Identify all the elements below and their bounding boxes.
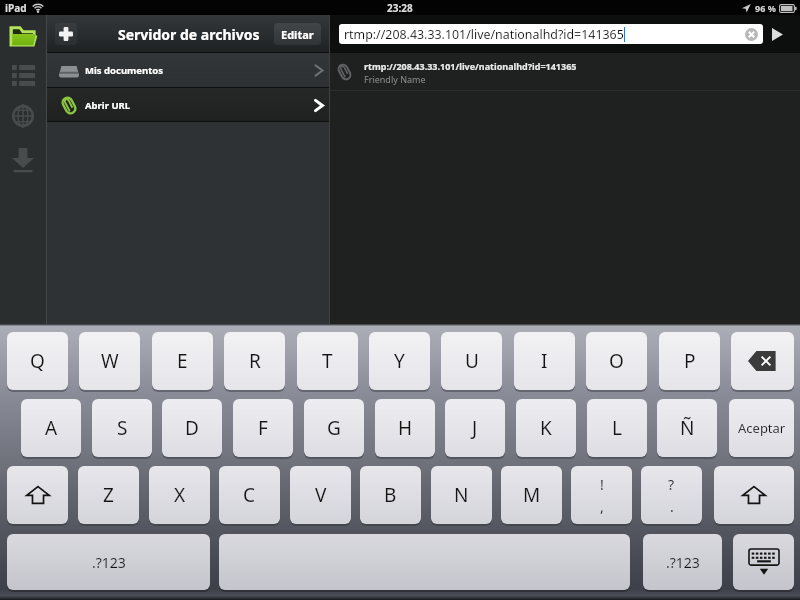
button[interactable]: I [514, 332, 575, 390]
staticText: J [472, 415, 478, 441]
button[interactable]: Downloads [4, 146, 42, 174]
staticText: A [45, 415, 58, 441]
staticText: ? [668, 475, 675, 494]
staticText: Abrir URL [85, 99, 131, 112]
staticText: Aceptar [738, 419, 786, 437]
button[interactable]: H [375, 399, 435, 457]
staticText: X [174, 482, 186, 508]
staticText: S [117, 415, 128, 441]
button[interactable]: File server [4, 21, 42, 49]
staticText: iPad [5, 1, 27, 15]
button[interactable]: B [360, 466, 421, 524]
button[interactable]: R [224, 332, 285, 390]
staticText: V [315, 482, 327, 508]
staticText: E [177, 348, 188, 374]
staticText: , [600, 497, 604, 516]
button[interactable]: Add [55, 23, 77, 45]
staticText: .?123 [666, 553, 700, 572]
staticText: .?123 [92, 553, 126, 572]
button[interactable]: rtmp://208.43.33.101/live/nationalhd?id=… [339, 24, 763, 44]
button[interactable]: Abrir URL [47, 88, 330, 122]
button[interactable]: K [516, 399, 576, 457]
button[interactable]: Ñ [657, 399, 717, 457]
button[interactable]: .?123 [7, 534, 210, 590]
staticText: R [249, 348, 261, 374]
button[interactable]: Q [7, 332, 68, 390]
button[interactable]: Shift [7, 466, 68, 524]
button[interactable]: Mis documentos [47, 53, 330, 88]
staticText: rtmp://208.43.33.101/live/nationalhd?id=… [364, 60, 577, 72]
button[interactable]: ! [571, 466, 632, 524]
button[interactable] [219, 534, 630, 590]
button[interactable]: V [290, 466, 351, 524]
staticText: F [258, 415, 268, 441]
button[interactable]: C [219, 466, 280, 524]
button[interactable]: M [501, 466, 562, 524]
staticText: Mis documentos [85, 64, 163, 77]
button[interactable]: S [92, 399, 152, 457]
button[interactable]: Y [369, 332, 430, 390]
button[interactable]: .?123 [643, 534, 722, 590]
button[interactable]: G [304, 399, 364, 457]
button[interactable]: Shift [714, 466, 794, 524]
button[interactable]: ? [641, 466, 702, 524]
button[interactable]: O [586, 332, 647, 390]
staticText: P [684, 348, 696, 374]
staticText: . [670, 497, 674, 516]
staticText: Z [103, 482, 114, 508]
staticText: G [327, 415, 341, 441]
staticText: W [101, 348, 119, 374]
button[interactable]: U [441, 332, 502, 390]
staticText: Editar [281, 27, 314, 42]
button[interactable]: Playlist [4, 62, 42, 88]
button[interactable]: rtmp://208.43.33.101/live/nationalhd?id=… [330, 53, 800, 91]
staticText: Servidor de archivos [118, 25, 260, 44]
staticText: rtmp://208.43.33.101/live/nationalhd?id=… [344, 26, 624, 43]
button[interactable]: J [445, 399, 505, 457]
staticText: D [185, 415, 199, 441]
staticText: Q [30, 348, 45, 374]
staticText: T [322, 348, 333, 374]
button[interactable]: T [297, 332, 358, 390]
button[interactable]: Network [4, 102, 42, 130]
staticText: I [541, 348, 548, 374]
button[interactable]: P [659, 332, 720, 390]
button[interactable]: A [21, 399, 81, 457]
staticText: H [398, 415, 413, 441]
staticText: N [454, 482, 469, 508]
button[interactable]: Backspace [731, 332, 794, 390]
button[interactable]: W [79, 332, 140, 390]
button[interactable]: X [149, 466, 210, 524]
staticText: Friendly Name [364, 73, 426, 85]
staticText: Y [394, 348, 405, 374]
staticText: 23:28 [387, 1, 413, 15]
staticText: K [540, 415, 552, 441]
button[interactable]: E [152, 332, 213, 390]
staticText: O [609, 348, 624, 374]
button[interactable]: Editar [274, 23, 321, 45]
staticText: U [465, 348, 479, 374]
button[interactable]: L [587, 399, 647, 457]
button[interactable]: N [431, 466, 492, 524]
button[interactable]: Aceptar [729, 399, 794, 457]
button[interactable]: Z [78, 466, 139, 524]
staticText: M [523, 482, 541, 508]
button[interactable]: F [233, 399, 293, 457]
staticText: 96 % [755, 2, 776, 14]
button[interactable]: Hide keyboard [733, 534, 794, 590]
staticText: ! [600, 475, 604, 494]
staticText: C [243, 482, 256, 508]
staticText: B [384, 482, 397, 508]
button[interactable]: D [162, 399, 222, 457]
staticText: Ñ [680, 415, 695, 441]
button[interactable]: Play [767, 24, 787, 44]
staticText: L [612, 415, 622, 441]
